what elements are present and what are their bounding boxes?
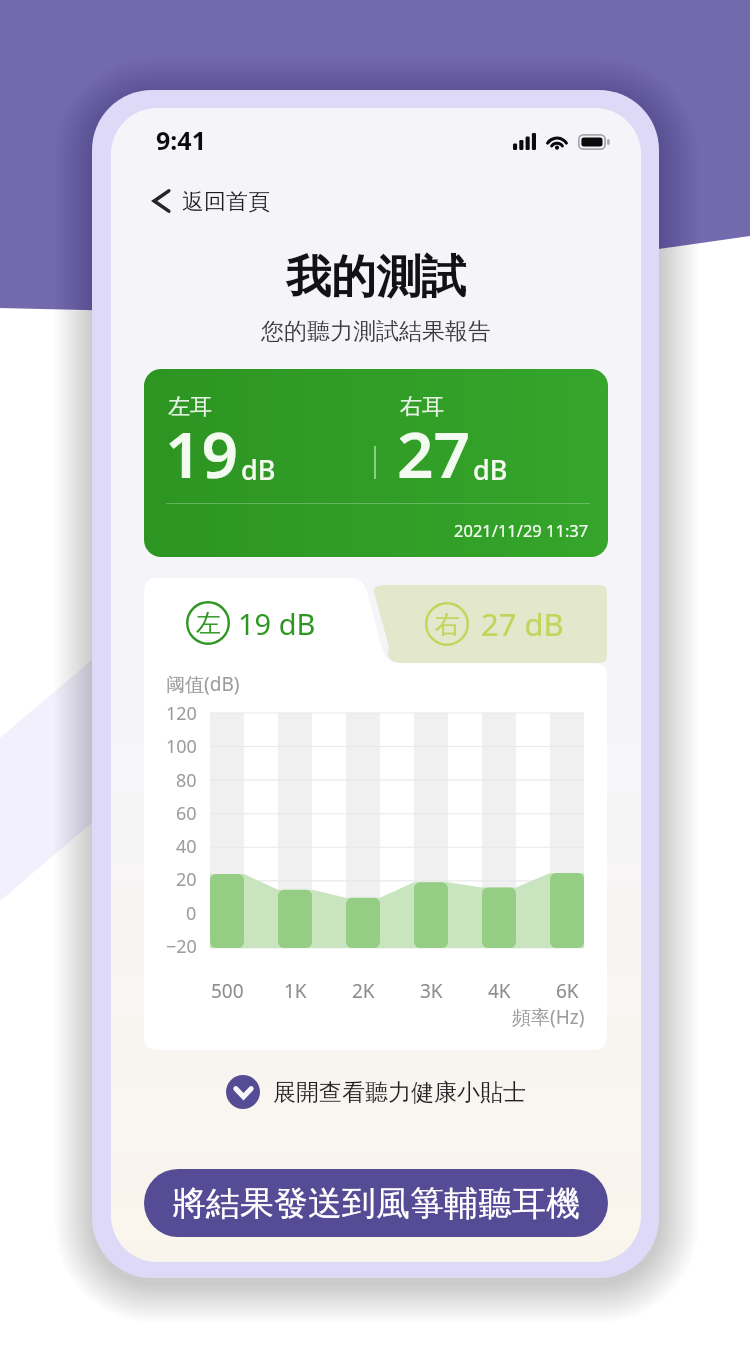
staticText: 左	[196, 608, 221, 639]
staticText: 500	[211, 978, 244, 1004]
staticText: dB	[241, 451, 276, 488]
staticText: 20	[176, 867, 197, 892]
staticText: 0	[186, 901, 197, 926]
staticText: 1K	[284, 978, 307, 1004]
staticText: 2021/11/29 11:37	[454, 519, 589, 541]
staticText: 頻率(Hz)	[512, 1004, 585, 1030]
staticText: 右	[435, 609, 460, 640]
staticText: 27	[397, 410, 471, 497]
button[interactable]: 左	[186, 591, 316, 655]
staticText: 4K	[488, 978, 511, 1004]
staticText: 返回首頁	[182, 188, 270, 216]
staticText: 19	[165, 410, 239, 497]
staticText: 80	[176, 768, 197, 793]
staticText: 左耳	[168, 393, 212, 421]
staticText: 19 dB	[238, 604, 316, 643]
staticText: 27 dB	[481, 603, 564, 645]
staticText: 100	[166, 734, 197, 759]
staticText: 40	[176, 834, 197, 859]
staticText: 120	[166, 701, 197, 726]
staticText: dB	[473, 451, 508, 488]
staticText: 展開查看聽力健康小貼士	[273, 1078, 526, 1107]
staticText: 60	[176, 801, 197, 826]
staticText: 阈值(dB)	[166, 671, 240, 697]
button[interactable]: 右	[368, 585, 607, 663]
staticText: 我的測試	[111, 249, 641, 306]
other: Expand hearing health tips	[226, 1075, 260, 1109]
button[interactable]: Expand hearing health tips	[226, 1065, 526, 1119]
staticText: 9:41	[156, 123, 206, 157]
button[interactable]: 返回首頁	[111, 170, 641, 232]
staticText: 您的聽力測試結果報告	[111, 317, 641, 346]
staticText: 2K	[352, 978, 375, 1004]
staticText: 3K	[420, 978, 443, 1004]
staticText: 6K	[556, 978, 579, 1004]
button[interactable]: 將結果發送到風箏輔聽耳機	[144, 1169, 608, 1237]
button[interactable]: 左耳	[144, 369, 608, 557]
staticText: 右耳	[400, 393, 444, 421]
staticText: 將結果發送到風箏輔聽耳機	[172, 1182, 580, 1225]
staticText: −20	[166, 934, 197, 959]
